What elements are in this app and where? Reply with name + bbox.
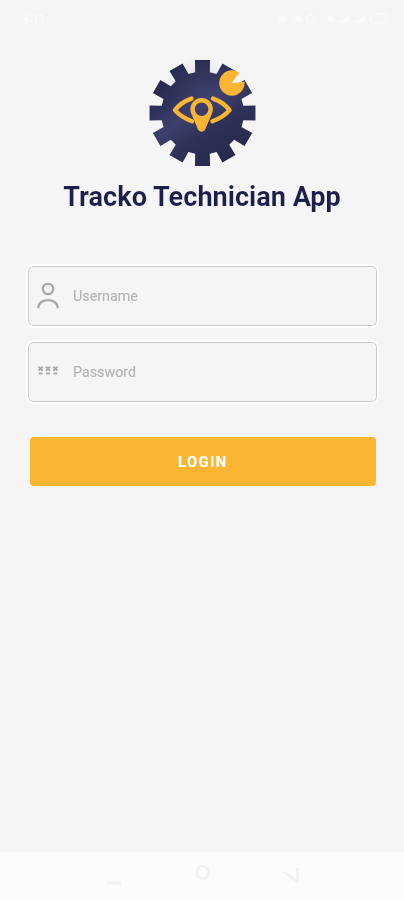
button[interactable]: Password	[28, 342, 377, 402]
staticText: Tracko Technician App	[0, 181, 404, 213]
button[interactable]: Username	[28, 266, 377, 326]
staticText: Password	[73, 364, 137, 381]
button[interactable]: LOGIN	[30, 437, 376, 486]
staticText: Username	[73, 288, 138, 305]
staticText: LOGIN	[178, 453, 228, 470]
